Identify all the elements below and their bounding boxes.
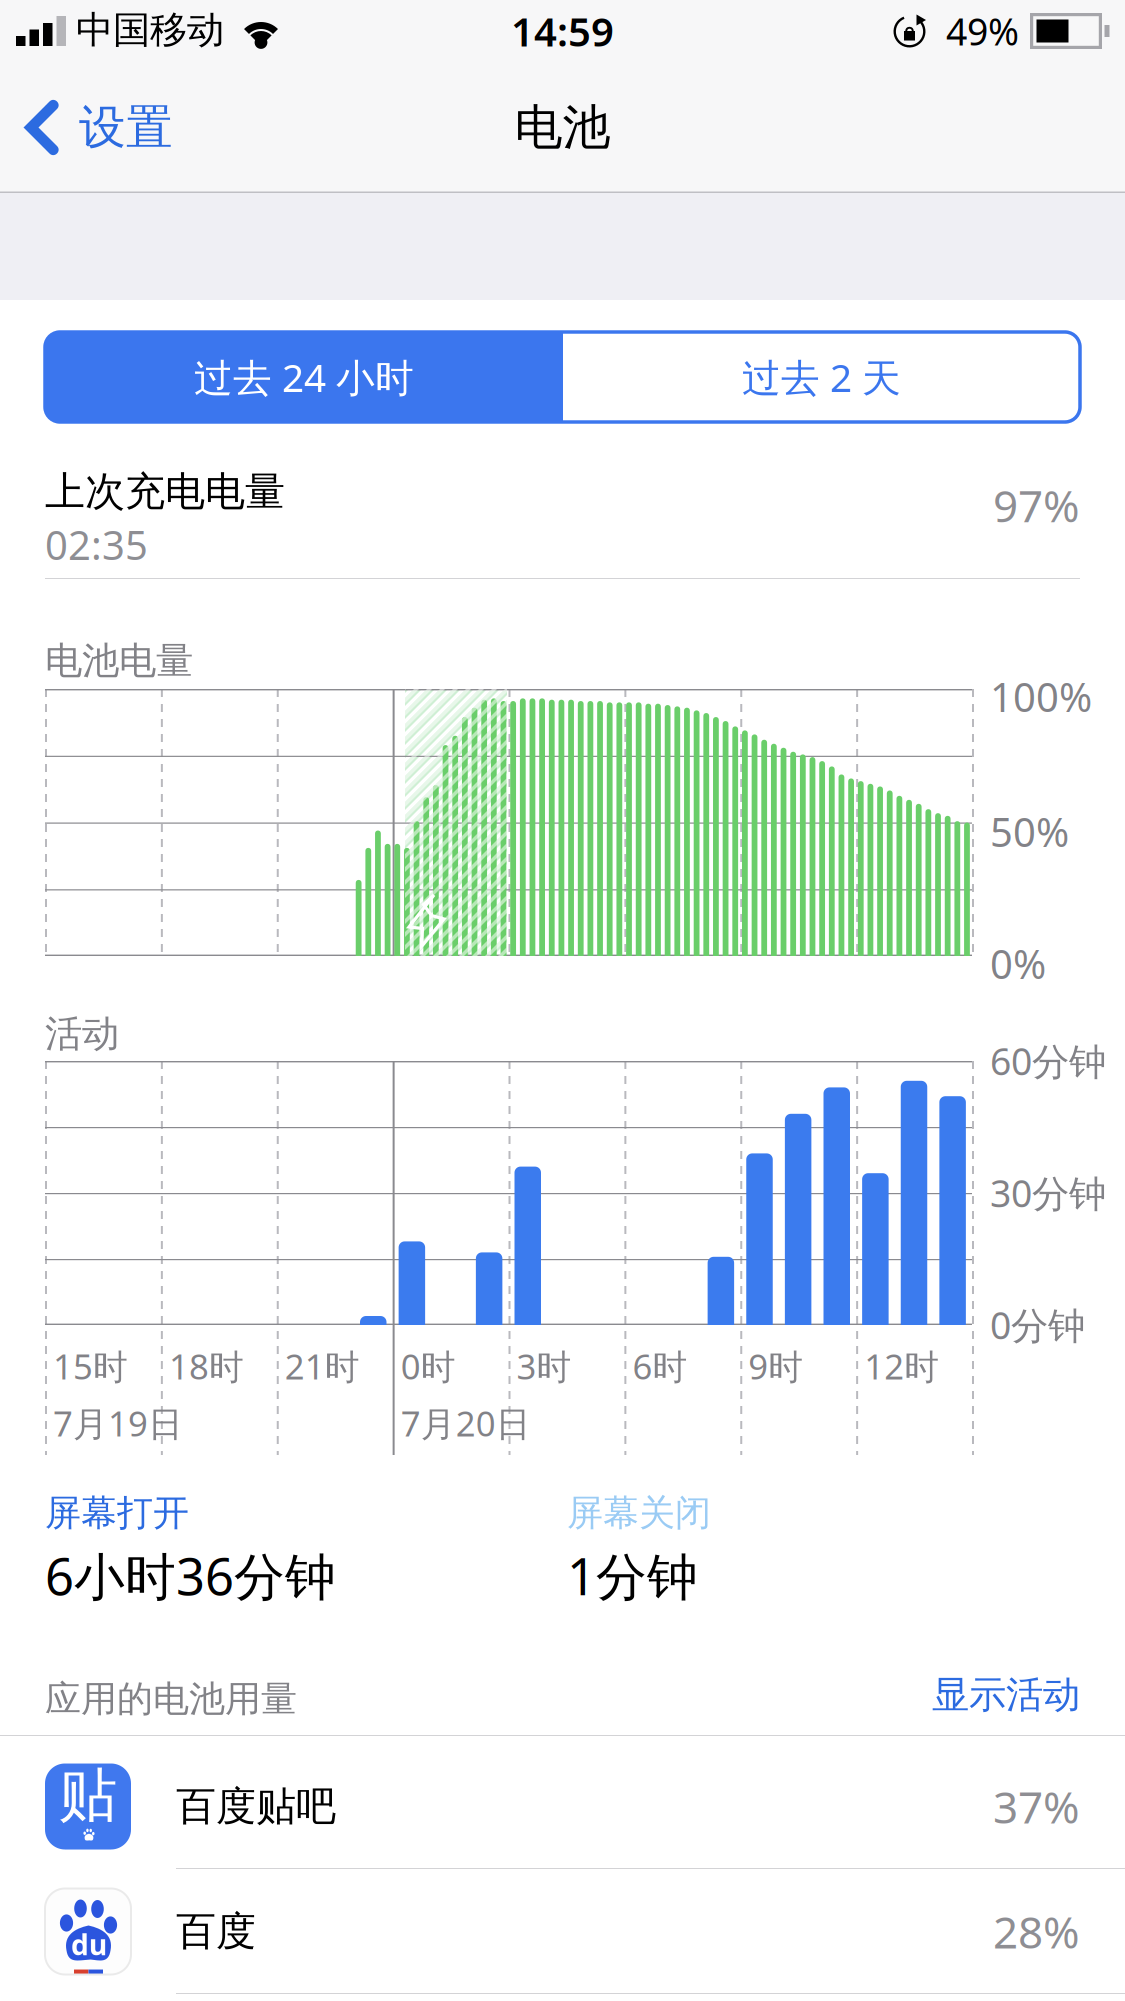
- staticText: du: [71, 1926, 107, 1963]
- staticText: 0时: [401, 1343, 456, 1389]
- staticText: 0%: [990, 937, 1046, 990]
- staticText: 中国移动: [76, 7, 224, 53]
- staticText: 贴: [58, 1759, 117, 1832]
- staticText: 活动: [45, 1011, 119, 1057]
- staticText: 上次充电电量: [45, 467, 285, 516]
- staticText: 1分钟: [567, 1542, 698, 1609]
- staticText: 过去 2 天: [742, 351, 901, 403]
- button[interactable]: 过去 24 小时: [45, 332, 563, 422]
- staticText: 28%: [993, 1902, 1080, 1961]
- staticText: 0分钟: [990, 1300, 1085, 1350]
- staticText: 49%: [946, 6, 1019, 56]
- staticText: 显示活动: [932, 1672, 1080, 1718]
- staticText: 电池电量: [45, 638, 193, 684]
- button[interactable]: 显示活动: [0, 0, 1125, 2001]
- staticText: 6时: [632, 1343, 687, 1389]
- staticText: 3时: [516, 1343, 571, 1389]
- staticText: 屏幕打开: [45, 1491, 189, 1535]
- staticText: 屏幕关闭: [567, 1491, 711, 1535]
- button[interactable]: 贴: [0, 1744, 1125, 1869]
- staticText: 应用的电池用量: [45, 1677, 297, 1721]
- staticText: 电池: [514, 98, 610, 157]
- staticText: 百度: [176, 1907, 256, 1956]
- staticText: 9时: [748, 1343, 803, 1389]
- staticText: 15时: [53, 1343, 128, 1389]
- staticText: 60分钟: [990, 1036, 1106, 1086]
- staticText: 7月19日: [53, 1400, 183, 1446]
- staticText: 100%: [990, 670, 1092, 723]
- staticText: 21时: [285, 1343, 360, 1389]
- staticText: 6小时36分钟: [45, 1542, 336, 1609]
- staticText: 设置: [79, 99, 173, 156]
- staticText: 02:35: [45, 518, 148, 571]
- button[interactable]: 设置: [0, 62, 199, 193]
- staticText: 12时: [864, 1343, 939, 1389]
- button[interactable]: du: [0, 1869, 1125, 1994]
- staticText: 30分钟: [990, 1168, 1106, 1218]
- staticText: 14:59: [511, 4, 614, 57]
- staticText: 37%: [993, 1777, 1080, 1836]
- staticText: 97%: [993, 476, 1080, 534]
- staticText: 18时: [169, 1343, 244, 1389]
- staticText: 50%: [990, 805, 1069, 858]
- staticText: 7月20日: [401, 1400, 531, 1446]
- staticText: 过去 24 小时: [194, 351, 414, 403]
- staticText: 百度贴吧: [176, 1782, 336, 1831]
- button[interactable]: 过去 2 天: [563, 332, 1080, 422]
